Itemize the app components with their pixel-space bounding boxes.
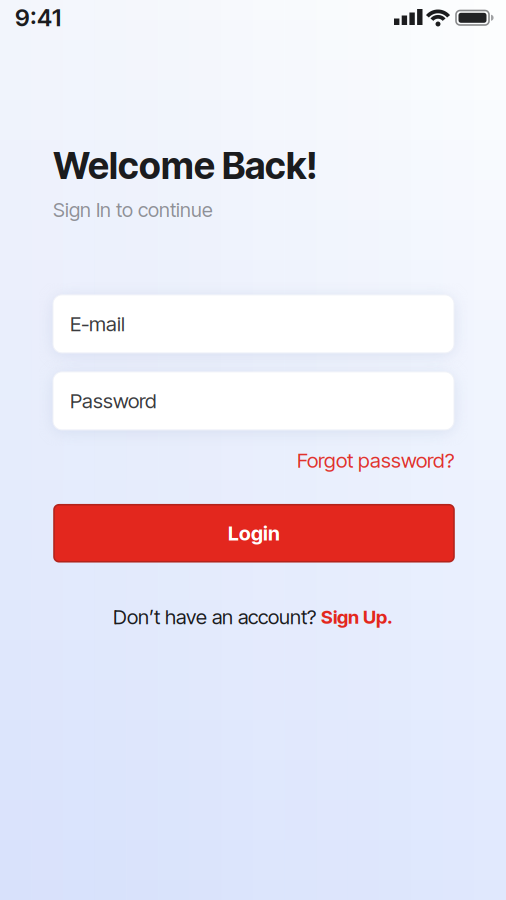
staticText: Sign In to continue	[53, 198, 213, 222]
staticText: Forgot password?	[297, 448, 454, 473]
staticText: Password	[70, 388, 157, 413]
button[interactable]: Login	[54, 505, 454, 562]
staticText: Login	[228, 521, 280, 545]
staticText: Sign Up.	[321, 606, 393, 628]
staticText: Don’t have an account?	[113, 605, 321, 629]
button[interactable]: Password	[53, 372, 454, 430]
button[interactable]: Forgot password?	[297, 448, 454, 473]
staticText: 9:41	[15, 3, 61, 32]
staticText: E-mail	[70, 311, 125, 336]
button[interactable]: E-mail	[53, 295, 454, 353]
button[interactable]: Sign Up.	[321, 606, 393, 628]
staticText: Welcome Back!	[53, 143, 318, 188]
